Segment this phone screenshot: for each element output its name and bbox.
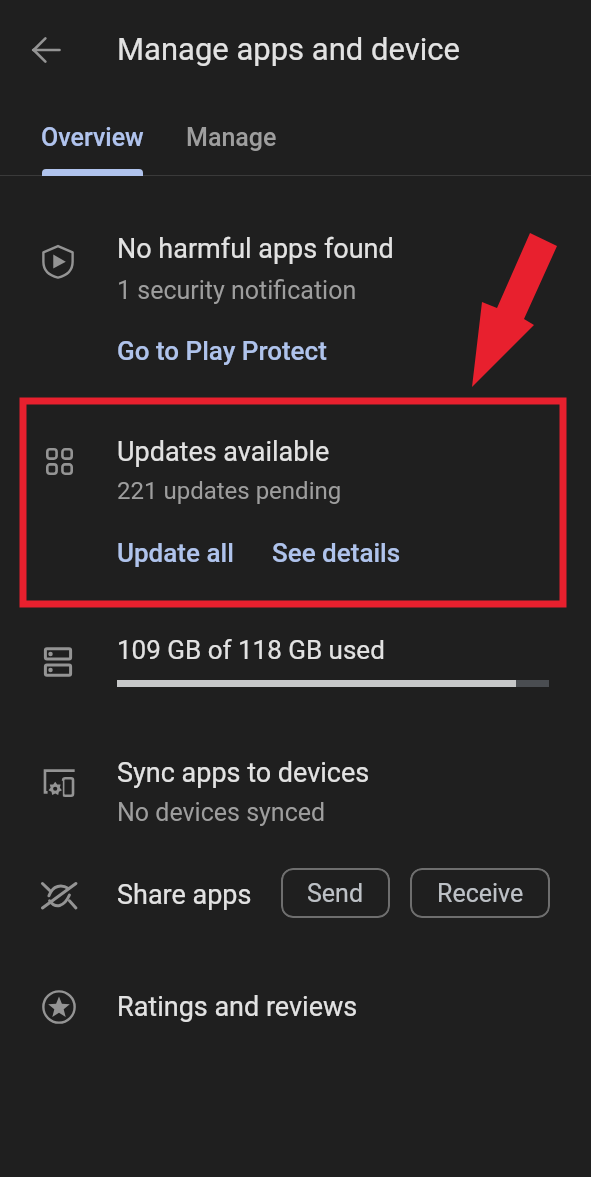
staticText: Sync apps to devices [117, 757, 370, 789]
staticText: Share apps [117, 879, 252, 911]
staticText: 221 updates pending [117, 477, 342, 505]
button[interactable]: No harmful apps found [0, 200, 591, 384]
button[interactable]: Back [18, 22, 74, 78]
button[interactable]: See details [272, 538, 401, 568]
staticText: Ratings and reviews [117, 991, 358, 1023]
staticText: Send [307, 879, 364, 908]
button[interactable]: Manage [162, 99, 301, 175]
button[interactable]: Updates available [0, 400, 591, 606]
staticText: Overview [41, 123, 144, 152]
button[interactable]: Overview [0, 99, 185, 175]
staticText: 1 security notification [117, 276, 357, 305]
button[interactable]: Update all [117, 538, 234, 568]
staticText: 109 GB of 118 GB used [117, 635, 385, 665]
staticText: Manage apps and device [117, 31, 460, 67]
staticText: No devices synced [117, 798, 326, 827]
button[interactable]: Send [281, 868, 390, 918]
staticText: Go to Play Protect [117, 336, 327, 366]
button[interactable]: Receive [410, 868, 550, 918]
staticText: Manage [186, 123, 277, 152]
staticText: Receive [437, 879, 524, 908]
staticText: Updates available [117, 436, 330, 468]
button[interactable]: 109 GB of 118 GB used [0, 620, 591, 720]
button[interactable]: Ratings and reviews [0, 978, 591, 1040]
staticText: No harmful apps found [117, 233, 394, 265]
button[interactable]: Sync apps to devices [0, 740, 591, 840]
